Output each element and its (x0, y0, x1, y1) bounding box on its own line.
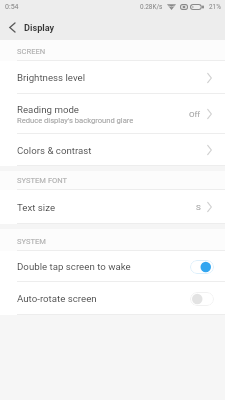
button[interactable]: Brightness level (0, 61, 225, 94)
button[interactable]: Back (0, 14, 24, 40)
staticText: SCREEN (17, 47, 46, 56)
staticText: S (196, 203, 201, 212)
button[interactable]: Double tap screen to wake (0, 251, 225, 282)
button[interactable]: Colors & contrast (0, 134, 225, 166)
button[interactable]: On (190, 260, 214, 274)
staticText: 0.28K/s (140, 3, 163, 11)
button[interactable]: Auto-rotate screen (0, 282, 225, 315)
staticText: Colors & contrast (17, 145, 92, 156)
staticText: Text size (17, 202, 56, 213)
staticText: Off (189, 110, 201, 119)
staticText: Display (24, 22, 55, 33)
button[interactable]: Off (190, 292, 214, 306)
staticText: 21% (209, 3, 221, 11)
staticText: 0:54 (5, 3, 19, 11)
staticText: SYSTEM (17, 237, 46, 246)
button[interactable]: Reading mode (0, 94, 225, 134)
staticText: Double tap screen to wake (17, 261, 190, 272)
staticText: Auto-rotate screen (17, 293, 190, 304)
staticText: Reading mode (17, 104, 80, 115)
staticText: Brightness level (17, 72, 86, 83)
staticText: SYSTEM FONT (17, 176, 68, 185)
staticText: Reduce display's background glare (17, 116, 134, 125)
button[interactable]: Text size (0, 190, 225, 224)
